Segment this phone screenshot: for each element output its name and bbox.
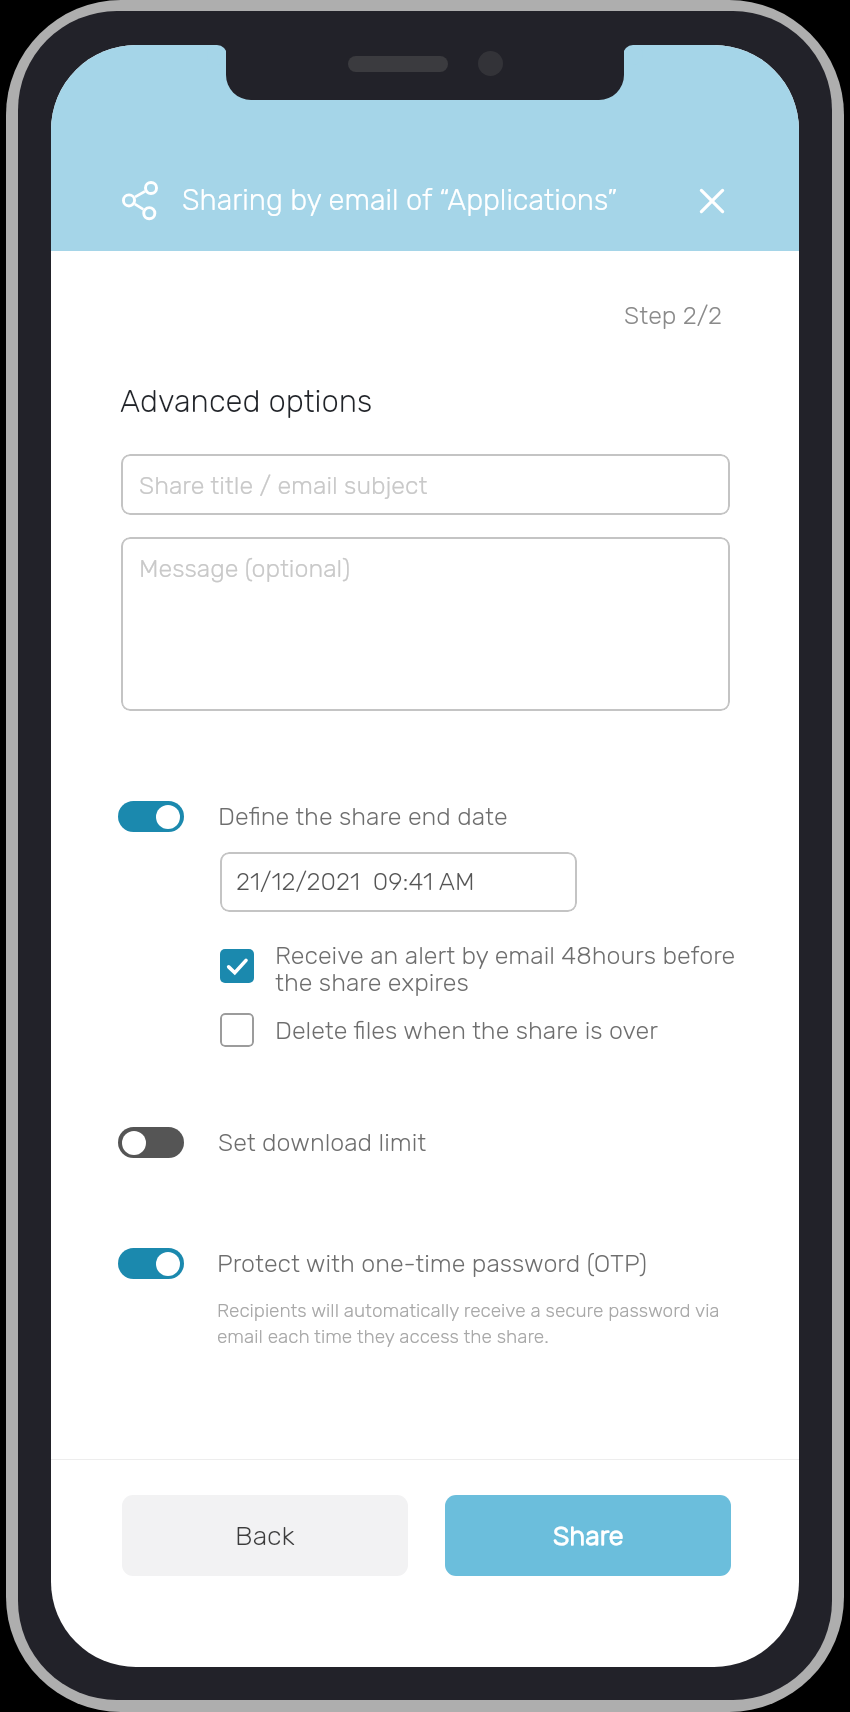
button[interactable] (220, 949, 254, 983)
button[interactable]: Back (122, 1495, 408, 1576)
button[interactable]: Share (445, 1495, 731, 1576)
button[interactable] (118, 1127, 184, 1158)
button[interactable] (118, 1248, 184, 1279)
button[interactable]: Close (690, 179, 734, 223)
staticText: Share (553, 1520, 624, 1552)
button[interactable] (118, 801, 184, 832)
button[interactable]: Share (118, 179, 162, 223)
staticText: 21/12/2021 09:41 AM (236, 867, 475, 897)
button[interactable]: 21/12/2021 09:41 AM (220, 852, 577, 912)
staticText: Set download limit (218, 1128, 427, 1158)
staticText: Define the share end date (218, 802, 508, 832)
staticText: Sharing by email of “Applications” (182, 183, 618, 217)
staticText: Delete files when the share is over (275, 1016, 658, 1046)
staticText: Back (235, 1520, 295, 1552)
button[interactable]: Message (optional) (121, 537, 730, 711)
staticText: Protect with one-time password (OTP) (217, 1249, 647, 1279)
button[interactable] (220, 1013, 254, 1047)
staticText: Receive an alert by email 48hours before… (275, 941, 736, 997)
staticText: Step 2/2 (624, 301, 722, 331)
staticText: Share title / email subject (139, 471, 428, 501)
staticText: Message (optional) (139, 554, 351, 584)
staticText: Recipients will automatically receive a … (217, 1299, 720, 1347)
staticText: Advanced options (120, 383, 373, 420)
button[interactable]: Share title / email subject (121, 454, 730, 515)
